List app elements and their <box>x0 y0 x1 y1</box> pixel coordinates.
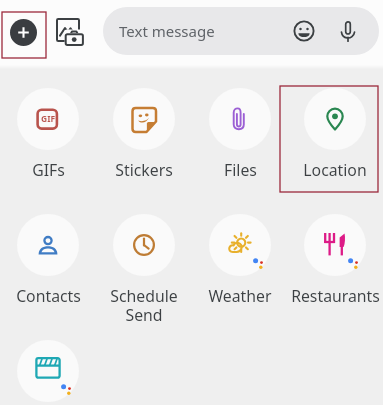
button[interactable]: Camera and gallery <box>55 17 85 47</box>
staticText: Contacts <box>16 285 81 307</box>
button[interactable]: Voice input <box>334 17 362 45</box>
staticText: GIFs <box>32 159 65 181</box>
staticText: GIF <box>41 113 56 125</box>
staticText: Location <box>303 159 367 181</box>
button[interactable]: Restaurants <box>287 214 383 314</box>
staticText: Files <box>224 159 257 181</box>
staticText: Restaurants <box>291 285 380 307</box>
button[interactable]: Text message <box>103 7 379 55</box>
button[interactable]: Emoji <box>290 17 318 45</box>
staticText: Weather <box>208 285 272 307</box>
staticText: Schedule Send <box>110 285 178 326</box>
button[interactable]: GIF <box>0 88 96 188</box>
button[interactable]: Location <box>287 88 383 188</box>
button[interactable]: Schedule Send <box>96 214 192 314</box>
staticText: Stickers <box>115 159 173 181</box>
button[interactable] <box>0 340 96 405</box>
button[interactable]: Contacts <box>0 214 96 314</box>
button[interactable]: Add attachment <box>10 19 37 46</box>
button[interactable]: Weather <box>192 214 288 314</box>
button[interactable]: Files <box>192 88 288 188</box>
staticText: Text message <box>119 21 215 41</box>
button[interactable]: Stickers <box>96 88 192 188</box>
